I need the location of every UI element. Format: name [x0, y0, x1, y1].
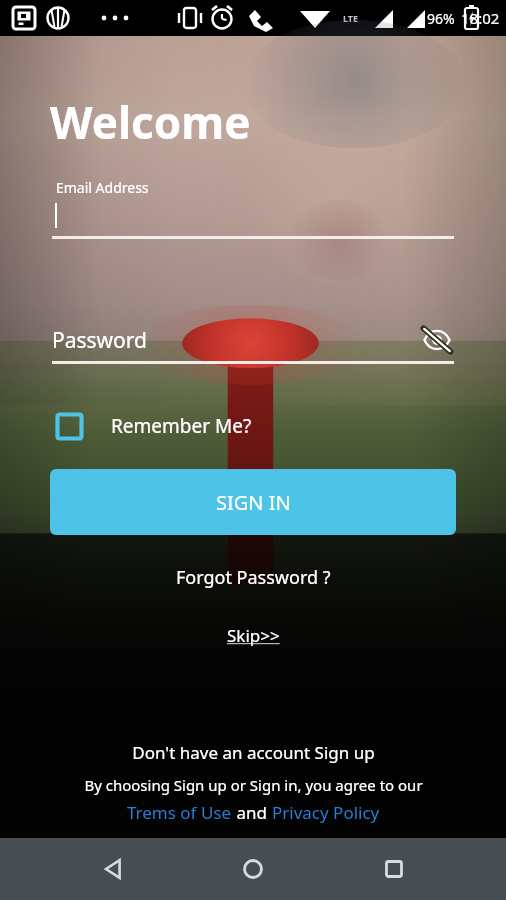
button[interactable]: Recent apps	[366, 841, 422, 897]
button[interactable]: Forgot Password ?	[176, 565, 331, 590]
staticText: Password	[52, 326, 147, 355]
button[interactable]: Show password	[420, 323, 454, 357]
staticText: By choosing Sign up or Sign in, you agre…	[84, 775, 423, 795]
staticText: Don't have an account Sign up	[132, 741, 375, 764]
button[interactable]: Remember Me?	[56, 408, 252, 444]
button[interactable]: Password	[52, 322, 454, 364]
staticText: 18:02	[461, 8, 500, 28]
staticText: Trems of Use	[127, 801, 232, 824]
button[interactable]: Trems of Use	[127, 801, 232, 824]
staticText: LTE	[343, 12, 359, 24]
button[interactable]: Home	[225, 841, 281, 897]
button[interactable]: Don't have an account Sign up	[0, 741, 506, 764]
staticText: 96%	[427, 9, 455, 28]
button[interactable]: Back	[85, 841, 141, 897]
staticText: Forgot Password ?	[176, 565, 331, 590]
button[interactable]: Skip>>	[227, 624, 280, 647]
staticText: Skip>>	[227, 624, 280, 647]
staticText: and	[232, 801, 272, 824]
staticText: Welcome	[50, 92, 251, 152]
staticText: Privacy Policy	[272, 801, 380, 824]
staticText: Remember Me?	[111, 413, 252, 439]
button[interactable]: Privacy Policy	[272, 801, 380, 824]
button[interactable]	[52, 197, 454, 239]
staticText: Email Address	[56, 178, 149, 197]
button[interactable]: SIGN IN	[50, 469, 456, 535]
staticText: SIGN IN	[216, 489, 291, 516]
